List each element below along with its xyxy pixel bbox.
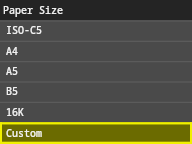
button[interactable]: Paper Size [0,0,192,20]
button[interactable]: A5 [0,61,192,81]
staticText: A4 [6,44,18,58]
button[interactable]: 16K [0,102,192,122]
staticText: A5 [6,64,18,78]
button[interactable]: A4 [0,41,192,61]
staticText: B5 [6,84,18,98]
staticText: Custom [6,126,42,140]
button[interactable]: B5 [0,81,192,101]
button[interactable]: Custom [0,122,192,144]
staticText: 16K [6,105,24,119]
button[interactable]: ISO-C5 [0,20,192,40]
staticText: ISO-C5 [6,23,42,37]
staticText: Paper Size [3,3,63,17]
